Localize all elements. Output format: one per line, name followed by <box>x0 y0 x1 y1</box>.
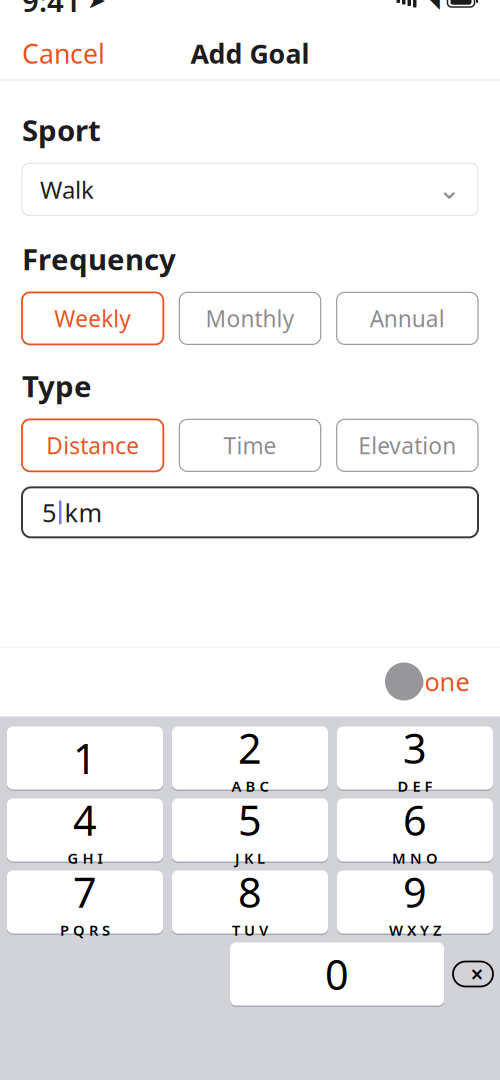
button[interactable]: 7 <box>7 870 163 933</box>
staticText: A B C <box>231 776 268 796</box>
button[interactable]: Weekly <box>22 292 163 344</box>
button[interactable]: 3 <box>337 726 493 789</box>
staticText: P Q R S <box>60 920 110 940</box>
button[interactable]: 0 <box>230 942 444 1005</box>
staticText: T U V <box>232 920 268 940</box>
staticText: Frequency <box>22 239 176 278</box>
button[interactable]: Delete <box>453 942 493 1005</box>
staticText: 1 <box>73 731 97 785</box>
staticText: 9:41 <box>22 0 81 20</box>
staticText: ◥ <box>424 0 439 12</box>
button[interactable]: Time <box>179 419 321 471</box>
button[interactable]: Distance <box>22 419 163 471</box>
button[interactable]: Annual <box>337 292 478 344</box>
staticText: × <box>470 959 483 989</box>
button[interactable]: Walk <box>22 163 478 215</box>
staticText: ➤ <box>87 0 106 13</box>
staticText: M N O <box>392 848 438 868</box>
button[interactable]: 8 <box>172 870 328 933</box>
button[interactable]: 4 <box>7 798 163 861</box>
button[interactable]: Cancel <box>0 27 127 79</box>
staticText: Sport <box>22 110 101 149</box>
staticText: km <box>64 495 102 529</box>
staticText: 0 <box>325 947 349 1001</box>
staticText: Distance <box>46 430 139 460</box>
staticText: Monthly <box>205 303 294 333</box>
staticText: 3 <box>403 720 427 775</box>
button[interactable]: Elevation <box>337 419 478 471</box>
button[interactable]: 2 <box>172 726 328 789</box>
staticText: Done <box>406 665 469 698</box>
staticText: Elevation <box>358 430 456 460</box>
staticText: Cancel <box>22 36 105 71</box>
staticText: 7 <box>73 864 97 919</box>
button[interactable]: 6 <box>337 798 493 861</box>
staticText: 4 <box>73 792 97 847</box>
staticText: ⌄ <box>438 174 460 205</box>
button[interactable]: 9 <box>337 870 493 933</box>
button[interactable]: Done <box>374 658 470 704</box>
staticText: 2 <box>238 720 262 775</box>
staticText: D E F <box>397 776 432 796</box>
staticText: Type <box>22 366 92 405</box>
staticText: G H I <box>67 848 102 868</box>
staticText: Walk <box>40 173 94 205</box>
staticText: 6 <box>403 792 427 847</box>
staticText: Weekly <box>54 303 131 333</box>
button[interactable]: 5 <box>172 798 328 861</box>
button[interactable]: 1 <box>7 726 163 789</box>
button[interactable]: Monthly <box>179 292 321 344</box>
staticText: Add Goal <box>190 36 309 71</box>
staticText: Annual <box>370 303 445 333</box>
staticText: Time <box>223 430 276 460</box>
button[interactable]: 5 <box>22 487 478 537</box>
staticText: 5 <box>238 792 262 847</box>
staticText: J K L <box>235 848 265 868</box>
staticText: W X Y Z <box>389 920 441 940</box>
staticText: 9 <box>403 864 427 919</box>
staticText: 5 <box>42 495 56 529</box>
staticText: 8 <box>238 864 262 919</box>
